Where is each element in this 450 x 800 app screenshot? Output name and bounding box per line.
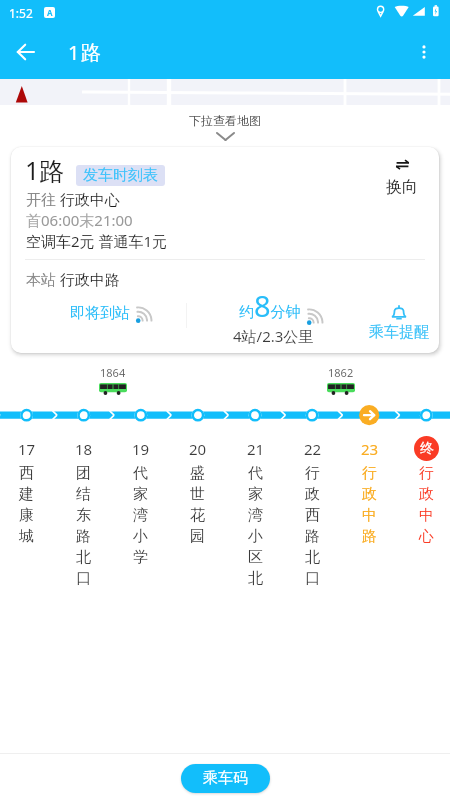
staticText: 代 xyxy=(133,464,148,483)
staticText: 代 xyxy=(248,464,263,483)
staticText: 路 xyxy=(362,527,377,546)
staticText: 口 xyxy=(305,569,320,588)
button[interactable]: 换向 xyxy=(377,156,427,197)
staticText: 1864 xyxy=(100,365,126,380)
staticText: 园 xyxy=(190,527,205,546)
button[interactable]: 乘车提醒 xyxy=(367,305,431,342)
staticText: 学 xyxy=(133,548,148,567)
staticText: 19 xyxy=(132,439,150,459)
staticText: 西 xyxy=(305,506,320,525)
button[interactable]: 发车时刻表 xyxy=(76,165,165,186)
button[interactable]: 20 xyxy=(169,436,226,547)
staticText: 空调车2元 普通车1元 xyxy=(26,231,168,251)
staticText: 盛 xyxy=(190,464,205,483)
staticText: 花 xyxy=(190,506,205,525)
staticText: 18 xyxy=(75,439,93,459)
staticText: 小 xyxy=(248,527,263,546)
staticText: 乘车码 xyxy=(203,769,248,788)
staticText: 1路 xyxy=(68,39,102,66)
button[interactable]: 乘车码 xyxy=(181,764,270,793)
staticText: 开往 行政中心 xyxy=(26,189,120,209)
staticText: 中 xyxy=(419,506,434,525)
staticText: 发车时刻表 xyxy=(83,166,158,185)
staticText: 1:52 xyxy=(9,5,33,21)
staticText: 17 xyxy=(18,439,36,459)
staticText: 北 xyxy=(76,548,91,567)
button[interactable]: Back xyxy=(4,31,46,73)
staticText: 23 xyxy=(361,439,379,459)
button[interactable]: 22 xyxy=(284,436,341,589)
button[interactable]: 21 xyxy=(227,436,284,589)
staticText: 湾 xyxy=(248,506,263,525)
staticText: 心 xyxy=(419,527,434,546)
staticText: 区 xyxy=(248,548,263,567)
button[interactable]: 即将到站 xyxy=(64,298,159,329)
staticText: 建 xyxy=(19,485,34,504)
staticText: 家 xyxy=(133,485,148,504)
staticText: 家 xyxy=(248,485,263,504)
staticText: 政 xyxy=(419,485,434,504)
button[interactable]: 18 xyxy=(55,436,112,589)
staticText: 20 xyxy=(189,439,207,459)
staticText: 东 xyxy=(76,506,91,525)
staticText: 政 xyxy=(362,485,377,504)
staticText: 4站/2.3公里 xyxy=(233,326,314,346)
button[interactable]: 17 xyxy=(0,436,55,547)
staticText: 首06:00末21:00 xyxy=(26,210,133,230)
staticText: 终 xyxy=(420,440,434,458)
button[interactable]: 23 xyxy=(341,436,398,547)
staticText: 21 xyxy=(247,439,265,459)
staticText: A xyxy=(47,7,53,18)
staticText: 22 xyxy=(304,439,322,459)
staticText: 城 xyxy=(19,527,34,546)
button[interactable]: 19 xyxy=(112,436,169,568)
staticText: 本站 行政中路 xyxy=(26,269,120,289)
staticText: 行 xyxy=(362,464,377,483)
staticText: 1862 xyxy=(328,365,354,380)
staticText: 路 xyxy=(76,527,91,546)
staticText: 约8分钟 xyxy=(239,286,301,325)
staticText: 小 xyxy=(133,527,148,546)
staticText: 湾 xyxy=(133,506,148,525)
staticText: 1路 xyxy=(25,153,65,187)
staticText: 团 xyxy=(76,464,91,483)
staticText: 乘车提醒 xyxy=(369,323,429,342)
staticText: 行 xyxy=(305,464,320,483)
staticText: 北 xyxy=(248,569,263,588)
staticText: 北 xyxy=(305,548,320,567)
staticText: 结 xyxy=(76,485,91,504)
staticText: 康 xyxy=(19,506,34,525)
staticText: 口 xyxy=(76,569,91,588)
button[interactable]: More options xyxy=(403,31,445,73)
staticText: 下拉查看地图 xyxy=(189,113,261,128)
staticText: 西 xyxy=(19,464,34,483)
staticText: 世 xyxy=(190,485,205,504)
staticText: 政 xyxy=(305,485,320,504)
staticText: 行 xyxy=(419,464,434,483)
staticText: 换向 xyxy=(386,177,418,197)
button[interactable]: 终 xyxy=(398,436,450,547)
staticText: 中 xyxy=(362,506,377,525)
staticText: 路 xyxy=(305,527,320,546)
staticText: 即将到站 xyxy=(70,304,130,323)
